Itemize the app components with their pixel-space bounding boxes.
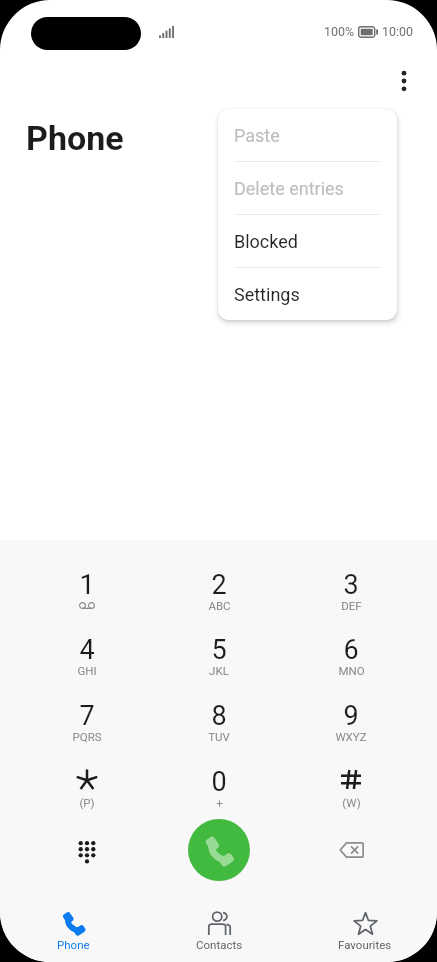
staticText: 5 <box>211 634 227 666</box>
button[interactable]: 5 <box>153 634 285 686</box>
staticText: JKL <box>209 664 229 677</box>
button[interactable]: Phone <box>1 900 146 962</box>
staticText: TUV <box>208 730 230 743</box>
button[interactable]: More options <box>382 59 426 103</box>
button[interactable]: Contacts <box>146 900 292 962</box>
button[interactable]: 6 <box>285 634 417 686</box>
button[interactable]: Settings <box>218 268 397 320</box>
button[interactable]: 0 <box>153 766 285 818</box>
staticText: Phone <box>26 118 124 158</box>
staticText: 10:00 <box>382 24 414 39</box>
button[interactable]: 2 <box>153 569 285 621</box>
staticText: 6 <box>343 634 359 666</box>
staticText: PQRS <box>72 730 102 743</box>
staticText: 4 <box>79 634 95 666</box>
button[interactable]: 4 <box>20 634 153 686</box>
staticText: 9 <box>343 700 359 732</box>
staticText: Blocked <box>234 231 298 252</box>
staticText: ABC <box>208 599 231 612</box>
staticText: (W) <box>342 796 361 809</box>
button[interactable]: 9 <box>285 700 417 752</box>
button[interactable]: 1 <box>20 569 153 621</box>
staticText: Delete entries <box>234 178 344 199</box>
button[interactable]: 8 <box>153 700 285 752</box>
staticText: (P) <box>79 796 95 809</box>
button[interactable]: Favourites <box>292 900 437 962</box>
staticText: Paste <box>234 125 280 146</box>
staticText: WXYZ <box>335 730 367 743</box>
staticText: Settings <box>234 284 300 305</box>
staticText: 1 <box>79 569 95 601</box>
staticText: 7 <box>79 700 95 732</box>
button[interactable]: (P) <box>20 766 153 818</box>
staticText: 2 <box>211 569 227 601</box>
staticText: DEF <box>341 599 362 612</box>
button[interactable]: 3 <box>285 569 417 621</box>
staticText: 100% <box>324 24 355 39</box>
button[interactable]: Backspace <box>285 819 417 881</box>
button[interactable]: Show keypad <box>20 819 153 881</box>
button[interactable]: Paste <box>218 109 397 161</box>
staticText: Phone <box>57 938 90 951</box>
staticText: 3 <box>343 569 359 601</box>
button[interactable]: (W) <box>285 766 417 818</box>
button[interactable]: Delete entries <box>218 162 397 214</box>
staticText: GHI <box>77 664 97 677</box>
staticText: 8 <box>211 700 227 732</box>
staticText: MNO <box>338 664 365 677</box>
button[interactable]: Blocked <box>218 215 397 267</box>
button[interactable]: Call <box>188 819 250 881</box>
staticText: Contacts <box>196 938 243 951</box>
staticText: 0 <box>211 766 227 798</box>
staticText: + <box>216 796 223 809</box>
staticText: Favourites <box>338 938 392 951</box>
button[interactable]: 7 <box>20 700 153 752</box>
